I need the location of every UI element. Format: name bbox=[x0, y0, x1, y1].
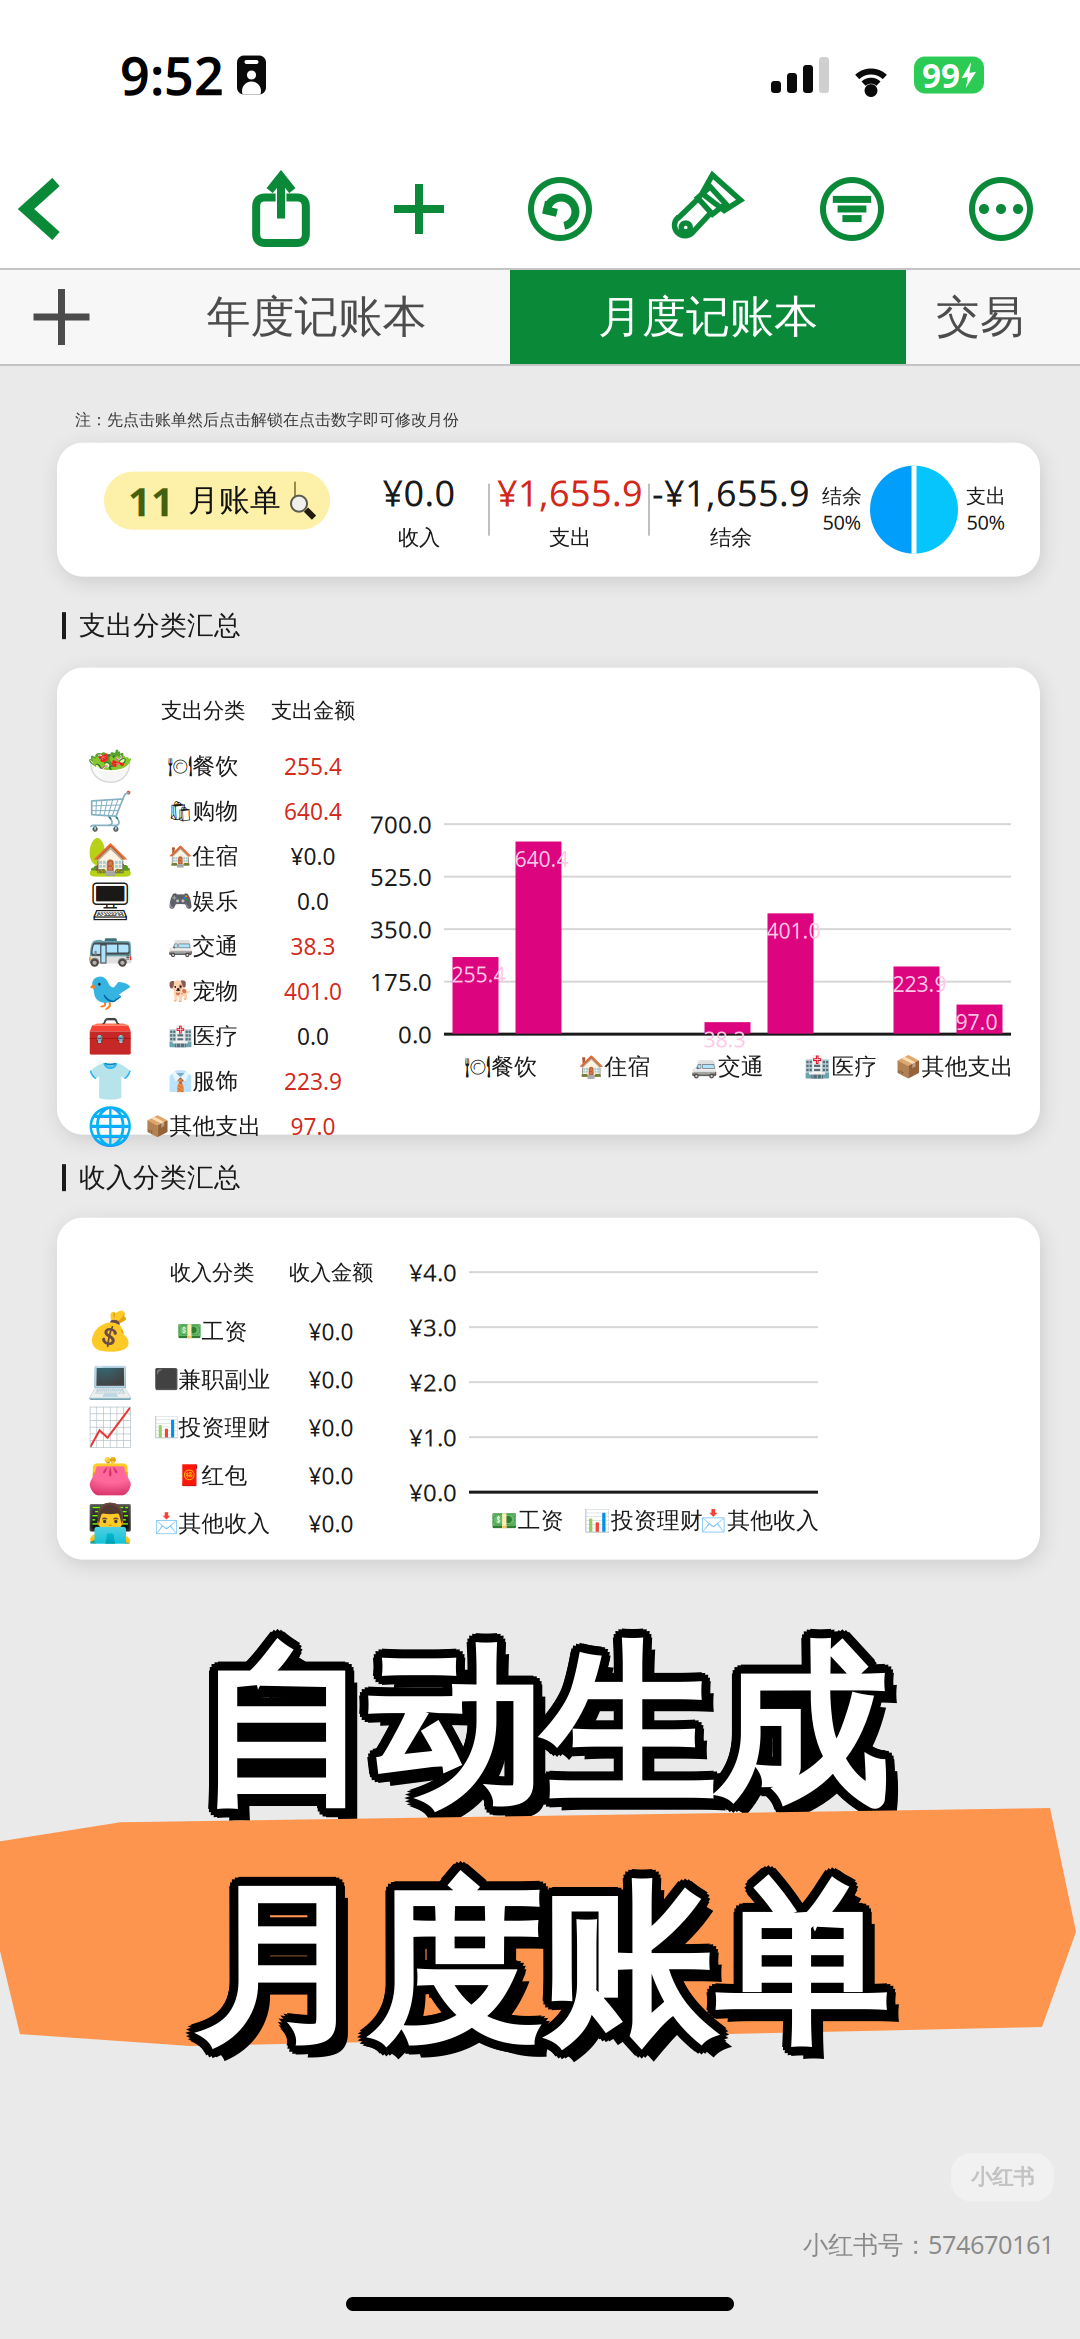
staticText: 223.9 bbox=[284, 1066, 342, 1096]
button[interactable]: New sheet bbox=[0, 268, 123, 366]
staticText: 🍽 bbox=[464, 1054, 491, 1079]
staticText: 700.0 bbox=[370, 808, 432, 840]
staticText: 自动生成 bbox=[206, 1635, 898, 1848]
staticText: 月度记账本 bbox=[598, 290, 818, 344]
staticText: 宠物 bbox=[192, 977, 238, 1005]
staticText: 🏡 bbox=[87, 835, 133, 877]
staticText: 投资理财 bbox=[611, 1507, 703, 1534]
staticText: 50% bbox=[822, 509, 861, 535]
staticText: 🚌 bbox=[87, 925, 133, 967]
staticText: 结余 bbox=[822, 484, 862, 509]
staticText: 月度账单 bbox=[206, 1873, 898, 2086]
staticText: 自动生成 bbox=[191, 1632, 883, 1845]
staticText: 📦 bbox=[895, 1054, 922, 1079]
staticText: ¥0.0 bbox=[308, 1509, 353, 1539]
staticText: ¥0.0 bbox=[308, 1461, 353, 1491]
staticText: 自动生成 bbox=[203, 1623, 895, 1836]
staticText: 收入分类汇总 bbox=[79, 1161, 241, 1194]
staticText: 🐕 bbox=[167, 980, 192, 1003]
staticText: 投资理财 bbox=[178, 1414, 270, 1441]
staticText: ¥0.0 bbox=[382, 469, 455, 516]
staticText: 月度账单 bbox=[188, 1855, 880, 2068]
staticText: ¥2.0 bbox=[409, 1366, 457, 1398]
staticText: 月度账单 bbox=[191, 1870, 883, 2083]
button[interactable]: 11 bbox=[104, 472, 330, 530]
staticText: 其他支出 bbox=[169, 1112, 261, 1140]
staticText: 自动生成 bbox=[185, 1623, 877, 1836]
staticText: 📈 bbox=[87, 1406, 133, 1449]
staticText: ¥1,655.9 bbox=[497, 469, 643, 516]
staticText: 💻 bbox=[87, 1358, 133, 1401]
staticText: 175.0 bbox=[370, 966, 432, 998]
staticText: 月度账单 bbox=[185, 1861, 877, 2074]
staticText: 月度账单 bbox=[197, 1870, 889, 2083]
button[interactable]: Insert bbox=[374, 150, 464, 268]
staticText: ¥0.0 bbox=[409, 1476, 457, 1508]
staticText: 服饰 bbox=[192, 1067, 238, 1095]
staticText: 🥗 bbox=[87, 745, 133, 787]
staticText: 🚐 bbox=[167, 935, 192, 958]
staticText: 🍽 bbox=[167, 755, 192, 778]
staticText: 月度账单 bbox=[202, 1858, 894, 2071]
staticText: 收入 bbox=[398, 524, 440, 551]
button[interactable]: Filter bbox=[807, 150, 897, 268]
staticText: 支出分类 bbox=[161, 698, 245, 724]
button[interactable]: Undo bbox=[515, 150, 605, 268]
staticText: 350.0 bbox=[370, 913, 432, 945]
staticText: 工资 bbox=[201, 1318, 247, 1345]
button[interactable]: 年度记账本 bbox=[123, 268, 510, 366]
staticText: 👔 bbox=[167, 1070, 192, 1093]
staticText: 其他收入 bbox=[727, 1507, 819, 1534]
staticText: 月度账单 bbox=[202, 1865, 894, 2078]
staticText: 11 bbox=[128, 474, 174, 527]
staticText: 自动生成 bbox=[202, 1620, 894, 1833]
staticText: 自动生成 bbox=[194, 1632, 886, 1845]
staticText: 月度账单 bbox=[194, 1852, 886, 2065]
button[interactable]: Format painter bbox=[660, 150, 750, 268]
staticText: 99 bbox=[922, 53, 960, 97]
staticText: 红包 bbox=[201, 1462, 247, 1489]
staticText: 📊 bbox=[153, 1416, 178, 1439]
staticText: 医疗 bbox=[831, 1053, 877, 1080]
staticText: 餐饮 bbox=[192, 752, 238, 780]
staticText: 收入金额 bbox=[289, 1260, 373, 1286]
staticText: 640.4 bbox=[284, 796, 342, 826]
staticText: 小红书 bbox=[971, 2164, 1034, 2190]
staticText: 自动生成 bbox=[197, 1632, 889, 1845]
staticText: 640.4 bbox=[514, 844, 568, 873]
button[interactable]: Share bbox=[236, 150, 326, 268]
staticText: 交通 bbox=[718, 1053, 764, 1080]
staticText: 结余 bbox=[710, 524, 752, 551]
button[interactable]: More bbox=[956, 150, 1046, 268]
staticText: 兼职副业 bbox=[178, 1366, 270, 1393]
staticText: 📦 bbox=[144, 1115, 169, 1138]
staticText: 其他支出 bbox=[922, 1053, 1014, 1080]
staticText: 📩 bbox=[700, 1508, 727, 1533]
staticText: 🛒 bbox=[87, 790, 133, 832]
staticText: 97.0 bbox=[955, 1008, 997, 1036]
staticText: 医疗 bbox=[192, 1022, 238, 1050]
staticText: 🏥 bbox=[804, 1054, 831, 1079]
staticText: -¥1,655.9 bbox=[652, 469, 810, 516]
staticText: 其他收入 bbox=[178, 1510, 270, 1537]
staticText: ¥0.0 bbox=[290, 841, 335, 871]
staticText: 收入分类 bbox=[170, 1260, 254, 1286]
button[interactable]: 月度记账本 bbox=[510, 268, 906, 366]
staticText: 自动生成 bbox=[202, 1627, 894, 1840]
staticText: 223.9 bbox=[892, 969, 946, 998]
staticText: 月度账单 bbox=[188, 1868, 880, 2081]
staticText: 👕 bbox=[87, 1060, 133, 1102]
button[interactable]: 交易 bbox=[906, 268, 1080, 366]
button[interactable]: Back bbox=[0, 150, 86, 268]
staticText: 工资 bbox=[518, 1507, 564, 1534]
staticText: 自动生成 bbox=[200, 1630, 892, 1843]
staticText: 自动生成 bbox=[188, 1617, 880, 1830]
staticText: ¥0.0 bbox=[308, 1413, 353, 1443]
staticText: 月度账单 bbox=[200, 1868, 892, 2081]
staticText: 住宿 bbox=[605, 1053, 651, 1080]
staticText: 自动生成 bbox=[194, 1623, 886, 1836]
staticText: 小红书号：574670161 bbox=[803, 2227, 1054, 2261]
staticText: 💵 bbox=[491, 1508, 518, 1533]
staticText: 🏠 bbox=[578, 1054, 605, 1079]
staticText: 自动生成 bbox=[200, 1617, 892, 1830]
